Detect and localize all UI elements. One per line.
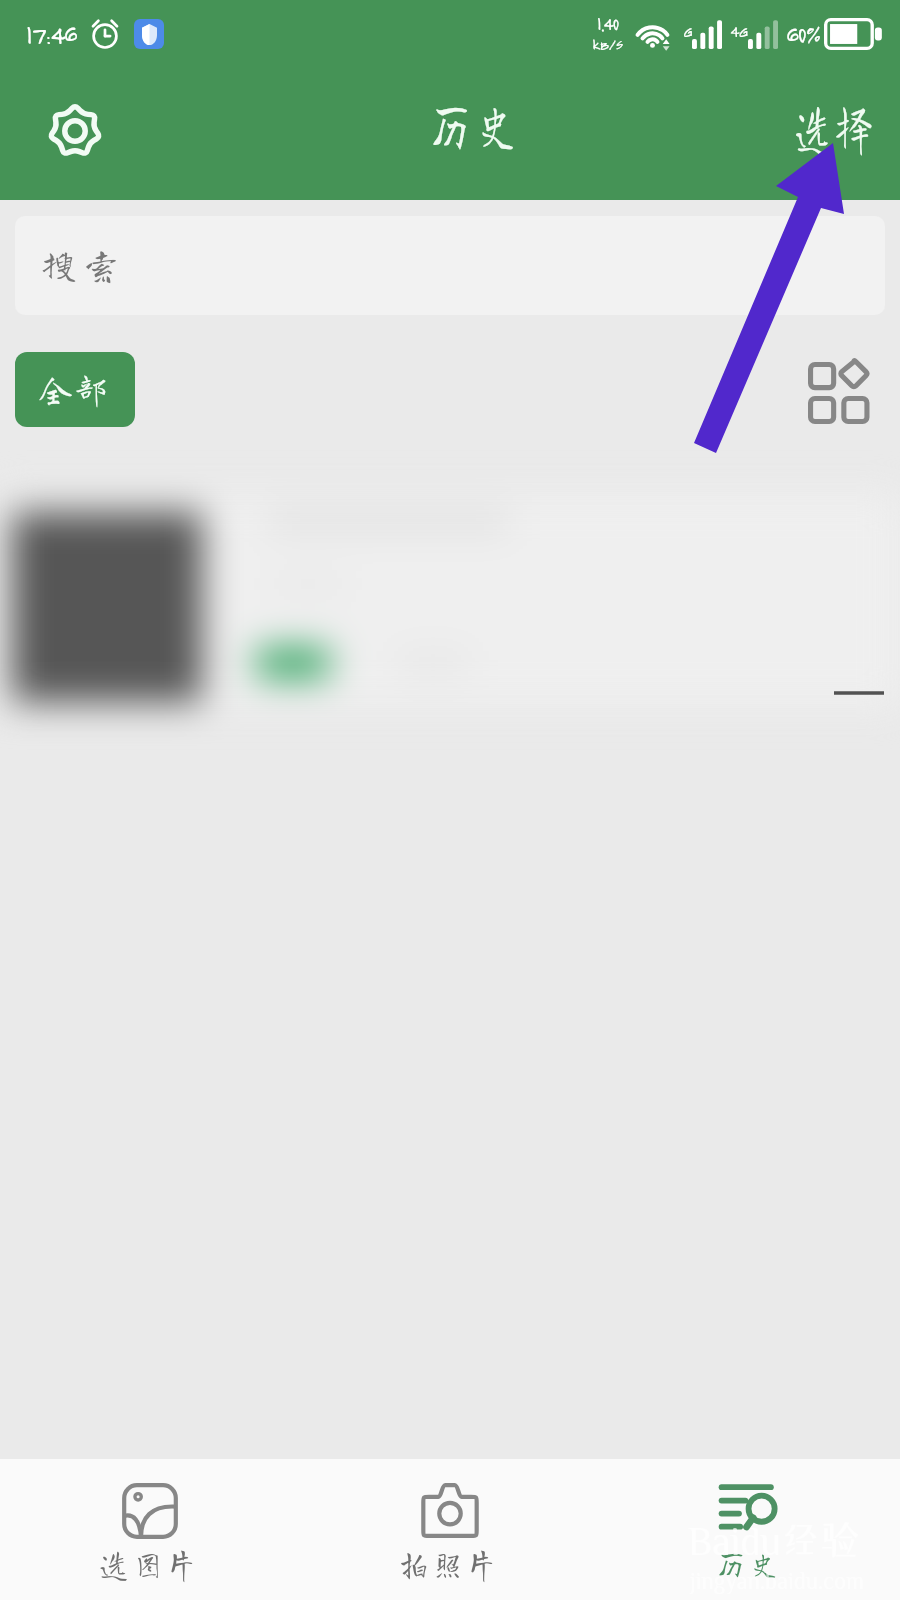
- staticText: 历史: [716, 1548, 784, 1580]
- staticText: 17:46: [26, 18, 76, 50]
- staticText: 历史: [429, 95, 524, 153]
- staticText: G: [683, 21, 692, 41]
- staticText: 选图片: [99, 1548, 201, 1580]
- button[interactable]: 拍照片: [300, 1459, 600, 1584]
- button[interactable]: 选择: [755, 92, 900, 162]
- staticText: 拍照片: [399, 1548, 501, 1580]
- staticText: 60%: [786, 19, 820, 49]
- staticText: 全部: [40, 370, 111, 406]
- button[interactable]: Settings: [36, 92, 114, 170]
- staticText: kB/S: [592, 35, 623, 53]
- button[interactable]: 全部: [15, 352, 135, 427]
- staticText: 搜索: [41, 246, 126, 282]
- button[interactable]: 搜索: [15, 216, 885, 315]
- staticText: 4G: [730, 21, 748, 41]
- button[interactable]: [0, 460, 900, 735]
- staticText: 选择: [794, 99, 877, 155]
- button[interactable]: 选图片: [0, 1459, 300, 1584]
- button[interactable]: Grid view: [800, 351, 876, 427]
- staticText: jingyan.baidu.com: [690, 1568, 864, 1592]
- staticText: 1.40: [597, 13, 619, 35]
- staticText: Baidu经验: [688, 1518, 860, 1560]
- button[interactable]: 历史: [600, 1459, 900, 1584]
